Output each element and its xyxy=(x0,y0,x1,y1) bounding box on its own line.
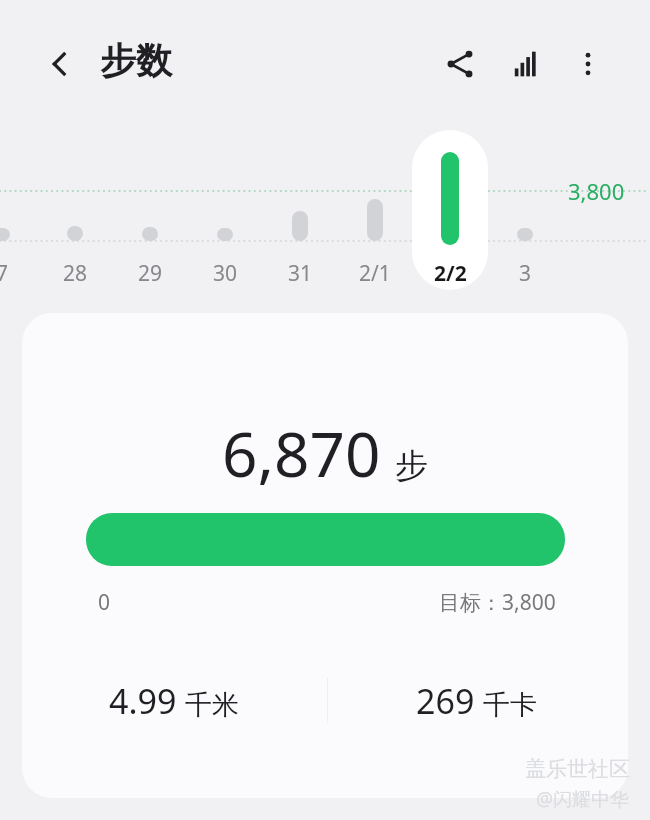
button[interactable]: 28 xyxy=(38,255,112,291)
button[interactable]: 2/1 xyxy=(338,255,412,291)
staticText: 28 xyxy=(63,259,88,288)
button[interactable]: 3 xyxy=(488,255,562,291)
button[interactable]: 30 xyxy=(188,255,262,291)
staticText: 4.99 xyxy=(109,678,177,724)
button[interactable]: Share xyxy=(434,38,486,90)
button[interactable]: More options xyxy=(562,38,614,90)
staticText: @闪耀中华 xyxy=(536,786,630,812)
staticText: 步数 xyxy=(100,38,172,90)
button[interactable]: 31 xyxy=(263,255,337,291)
button[interactable]: 7 xyxy=(0,255,39,291)
button[interactable]: Back xyxy=(34,38,86,90)
staticText: 目标：3,800 xyxy=(439,588,556,617)
button[interactable]: 269 xyxy=(325,673,628,729)
button[interactable]: 2/2 xyxy=(413,255,487,291)
staticText: 2/1 xyxy=(359,259,391,288)
staticText: 29 xyxy=(138,259,163,288)
staticText: 3,800 xyxy=(568,176,625,206)
staticText: 千米 xyxy=(185,688,239,722)
staticText: 3 xyxy=(519,259,532,288)
staticText: 7 xyxy=(0,259,9,288)
staticText: 30 xyxy=(213,259,238,288)
staticText: 步 xyxy=(395,445,428,487)
staticText: 31 xyxy=(288,259,313,288)
button[interactable]: 6,870 xyxy=(22,313,628,798)
staticText: 盖乐世社区 xyxy=(525,756,630,782)
button[interactable] xyxy=(412,130,488,290)
staticText: 0 xyxy=(98,588,111,617)
staticText: 2/2 xyxy=(434,259,467,288)
staticText: 千卡 xyxy=(483,688,537,722)
button[interactable]: Chart xyxy=(500,38,552,90)
staticText: 269 xyxy=(416,678,475,724)
button[interactable]: 4.99 xyxy=(22,673,325,729)
button[interactable]: 29 xyxy=(113,255,187,291)
staticText: 6,870 xyxy=(222,411,381,495)
